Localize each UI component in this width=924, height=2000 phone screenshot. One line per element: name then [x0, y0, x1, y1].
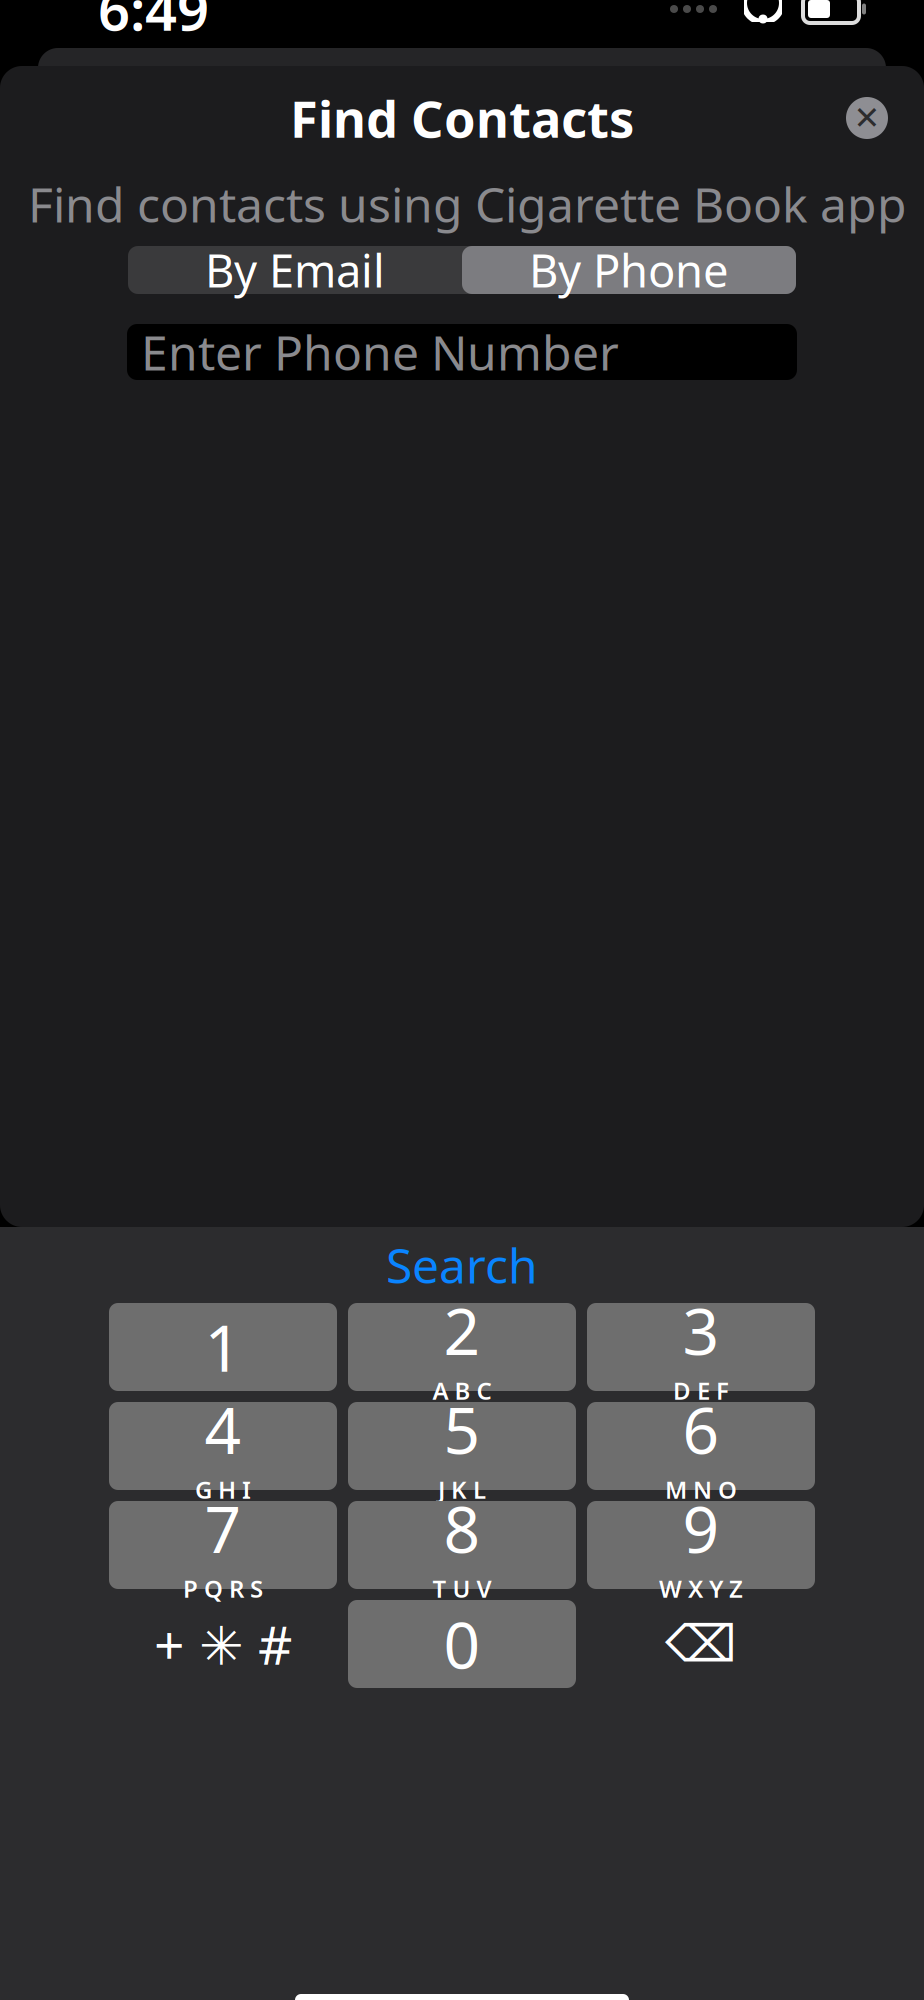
- staticText: 2: [443, 1288, 480, 1373]
- staticText: P Q R S: [183, 1573, 263, 1604]
- staticText: ✕: [853, 100, 880, 136]
- button[interactable]: 8: [348, 1501, 576, 1589]
- staticText: By Email: [205, 240, 385, 300]
- staticText: W X Y Z: [659, 1573, 743, 1604]
- button[interactable]: 6: [587, 1402, 815, 1490]
- staticText: A B C: [432, 1375, 491, 1406]
- button[interactable]: Search: [0, 1227, 924, 1303]
- staticText: By Phone: [529, 240, 729, 300]
- staticText: Enter Phone Number: [141, 320, 619, 384]
- staticText: 3: [682, 1288, 719, 1373]
- staticText: 6: [682, 1387, 719, 1472]
- staticText: D E F: [673, 1375, 729, 1406]
- button[interactable]: 7: [109, 1501, 337, 1589]
- button[interactable]: 5: [348, 1402, 576, 1490]
- staticText: T U V: [432, 1573, 491, 1604]
- button[interactable]: Close: [846, 97, 888, 139]
- staticText: 8: [443, 1486, 480, 1571]
- button[interactable]: 0: [348, 1600, 576, 1688]
- staticText: Search: [386, 1233, 538, 1297]
- button[interactable]: 4: [109, 1402, 337, 1490]
- button[interactable]: By Email: [128, 246, 462, 294]
- staticText: 4: [204, 1387, 241, 1472]
- staticText: 1: [204, 1304, 241, 1389]
- staticText: 0: [443, 1601, 480, 1686]
- staticText: G H I: [195, 1474, 251, 1505]
- staticText: J K L: [438, 1474, 486, 1505]
- button[interactable]: Plus, star, pound: [109, 1600, 337, 1688]
- button[interactable]: Delete: [587, 1600, 815, 1688]
- staticText: M N O: [665, 1474, 737, 1505]
- button[interactable]: 9: [587, 1501, 815, 1589]
- staticText: Find Contacts: [290, 84, 634, 152]
- button[interactable]: 3: [587, 1303, 815, 1391]
- staticText: 6:49: [98, 0, 209, 46]
- staticText: + ✳ #: [154, 1609, 292, 1679]
- staticText: 9: [682, 1486, 719, 1571]
- button[interactable]: By Phone: [462, 246, 796, 294]
- staticText: 5: [443, 1387, 480, 1472]
- staticText: Find contacts using Cigarette Book app: [28, 172, 907, 236]
- button[interactable]: 2: [348, 1303, 576, 1391]
- staticText: ⌫: [665, 1615, 737, 1673]
- button[interactable]: 1: [109, 1303, 337, 1391]
- staticText: 7: [204, 1486, 241, 1571]
